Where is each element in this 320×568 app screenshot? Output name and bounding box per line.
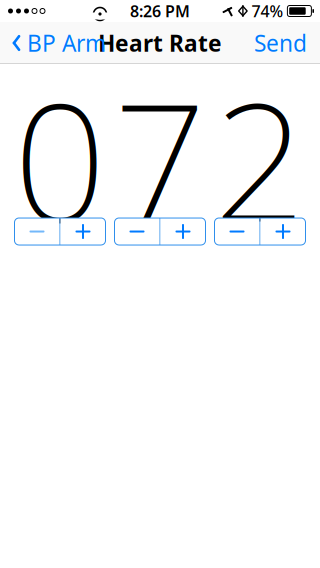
- button[interactable]: Increment: [60, 218, 105, 245]
- button[interactable]: Decrement: [114, 218, 159, 245]
- staticText: BP Arm: [27, 28, 106, 58]
- staticText: 0: [13, 50, 106, 266]
- button[interactable]: BP Arm: [3, 20, 114, 66]
- button[interactable]: Decrement: [14, 218, 59, 245]
- staticText: Heart Rate: [98, 28, 222, 58]
- button[interactable]: Increment: [160, 218, 205, 245]
- staticText: 74%: [251, 0, 283, 22]
- button[interactable]: Increment: [260, 218, 305, 245]
- staticText: 7: [113, 50, 206, 266]
- button[interactable]: Decrement: [214, 218, 259, 245]
- staticText: Send: [254, 28, 307, 58]
- button[interactable]: Send: [244, 20, 317, 66]
- staticText: 8:26 PM: [130, 0, 190, 22]
- staticText: 2: [213, 50, 306, 266]
